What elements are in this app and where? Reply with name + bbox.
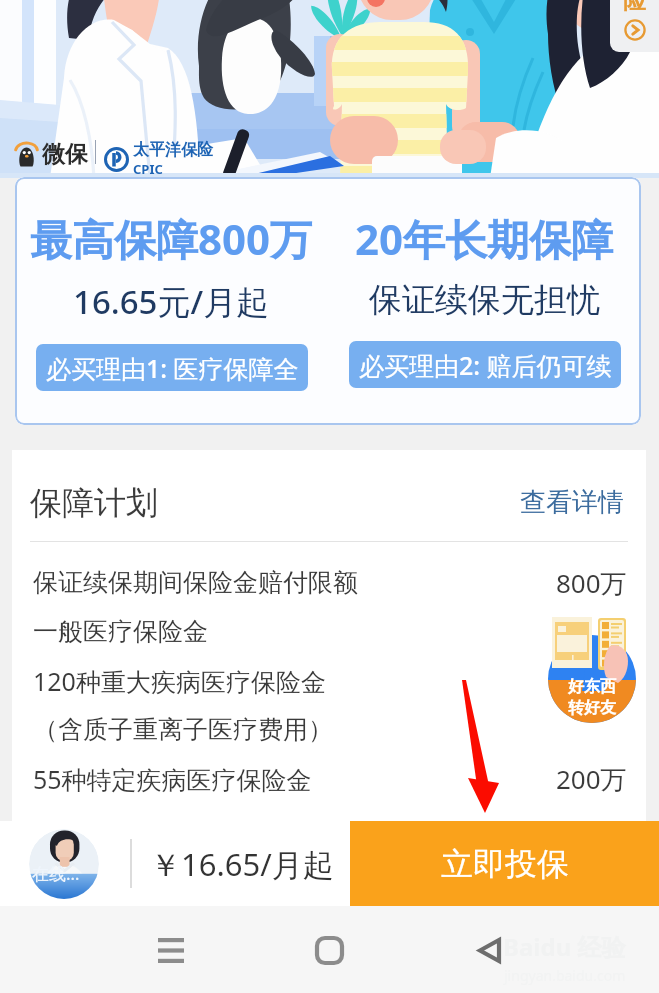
button[interactable]: Back <box>466 927 512 973</box>
staticText: 800万 <box>556 565 627 601</box>
button[interactable]: 在线客服 <box>29 829 99 899</box>
staticText: 好东西 <box>568 677 616 697</box>
staticText: 最高保障800万 <box>30 210 313 267</box>
button[interactable]: 一般医疗保险金 <box>33 607 627 656</box>
staticText: 在线… <box>32 862 80 885</box>
button[interactable]: 保险详情 <box>610 0 659 52</box>
button[interactable]: Home <box>306 927 352 973</box>
button[interactable]: 55种特定疾病医疗保险金 <box>33 754 627 803</box>
button[interactable]: 必买理由1: 医疗保障全 <box>36 344 308 391</box>
button[interactable]: （含质子重离子医疗费用） <box>33 705 627 754</box>
staticText: 16.65元/月起 <box>73 279 270 324</box>
staticText: 险 <box>623 0 646 15</box>
staticText: 转好友 <box>568 698 616 718</box>
staticText: 保证续保期间保险金赔付限额 <box>33 567 358 598</box>
staticText: 立即投保 <box>441 844 569 884</box>
staticText: （含质子重离子医疗费用） <box>33 714 333 745</box>
staticText: 必买理由1: 医疗保障全 <box>46 351 299 385</box>
button[interactable]: 120种重大疾病医疗保险金 <box>33 656 627 705</box>
button[interactable]: 立即投保 <box>350 821 659 906</box>
button[interactable]: 好东西转好友 <box>548 613 636 723</box>
staticText: ￥16.65/月起 <box>150 843 334 885</box>
staticText: 查看详情 <box>520 486 624 519</box>
staticText: 微保 <box>42 140 88 169</box>
staticText: CPIC <box>133 160 163 178</box>
staticText: 保证续保无担忧 <box>369 279 600 321</box>
staticText: 20年长期保障 <box>355 210 614 267</box>
staticText: 保障计划 <box>30 483 158 523</box>
staticText: 太平洋保险 <box>133 140 213 160</box>
staticText: 55种特定疾病医疗保险金 <box>33 762 312 796</box>
button[interactable]: Recents <box>148 927 194 973</box>
button[interactable]: 必买理由2: 赔后仍可续 <box>349 341 621 388</box>
button[interactable]: 保证续保期间保险金赔付限额 <box>33 558 627 607</box>
staticText: 必买理由2: 赔后仍可续 <box>359 348 612 382</box>
staticText: 200万 <box>556 761 627 797</box>
staticText: 120种重大疾病医疗保险金 <box>33 664 326 698</box>
button[interactable]: 查看详情 <box>516 482 628 523</box>
staticText: 一般医疗保险金 <box>33 616 208 647</box>
